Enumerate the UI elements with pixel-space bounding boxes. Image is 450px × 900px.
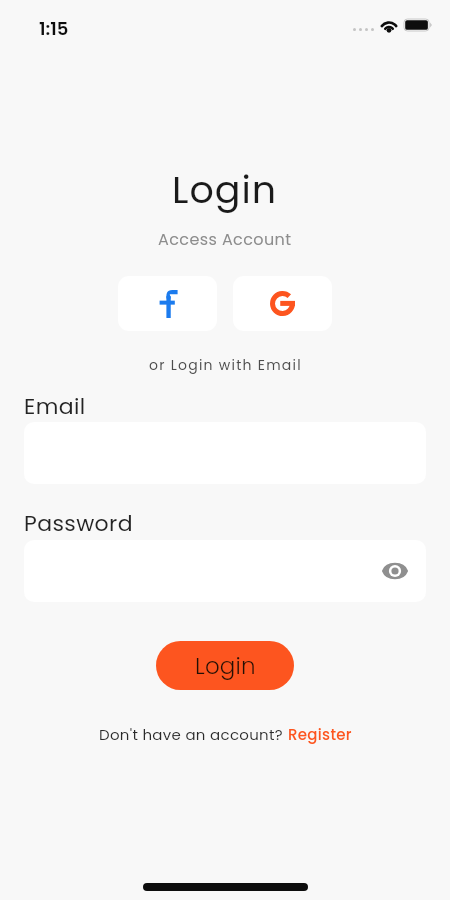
staticText: Email: [24, 391, 86, 422]
staticText: 1:15: [39, 16, 69, 41]
button[interactable]: Login: [156, 641, 294, 690]
staticText: Register: [288, 724, 352, 745]
button[interactable]: Login with Facebook: [118, 276, 217, 331]
staticText: or Login with Email: [149, 355, 302, 375]
staticText: Login: [172, 163, 278, 216]
button[interactable]: Email: [24, 391, 86, 422]
staticText: Login: [195, 650, 256, 682]
button[interactable]: Show password: [380, 556, 410, 586]
staticText: Access Account: [158, 228, 292, 250]
button[interactable]: Show password: [24, 540, 426, 602]
button[interactable]: Password: [24, 508, 133, 539]
button[interactable]: Login with Google: [233, 276, 332, 331]
button[interactable]: Register: [288, 724, 352, 745]
staticText: Password: [24, 508, 133, 539]
staticText: Don't have an account?: [99, 724, 288, 745]
